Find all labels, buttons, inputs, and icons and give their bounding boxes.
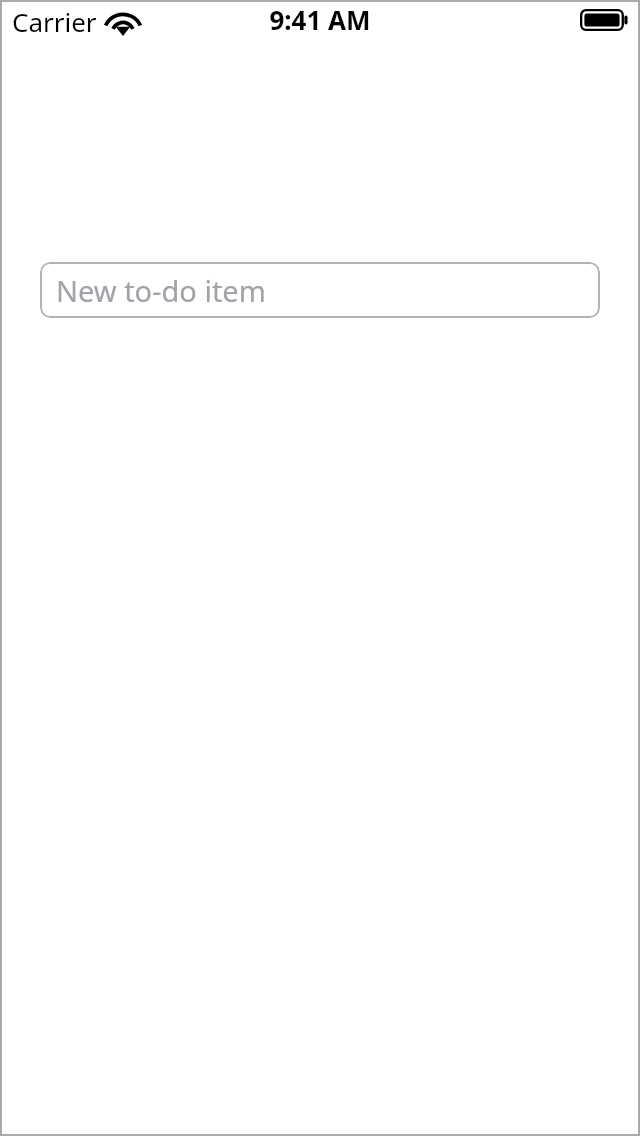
staticText: Carrier: [12, 4, 97, 39]
staticText: 9:41 AM: [269, 2, 371, 37]
staticText: New to-do item: [56, 271, 266, 310]
button[interactable]: New to-do item: [40, 262, 600, 318]
